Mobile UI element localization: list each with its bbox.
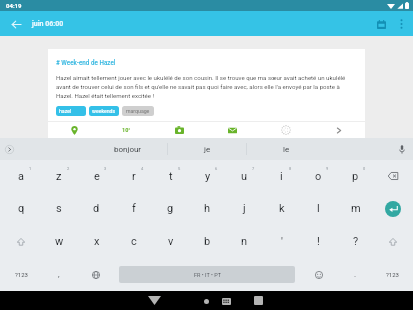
button[interactable]: x — [78, 225, 115, 258]
button[interactable]: le — [247, 138, 325, 160]
staticText: b — [204, 235, 211, 248]
button[interactable]: p — [337, 160, 374, 192]
button[interactable]: ?123 — [374, 258, 411, 291]
button[interactable]: e — [78, 160, 115, 192]
button[interactable]: ?123 — [2, 258, 40, 291]
button[interactable]: Home — [197, 292, 215, 310]
staticText: s — [56, 202, 62, 215]
button[interactable]: Email — [206, 122, 259, 138]
button[interactable]: ! — [300, 225, 337, 258]
staticText: q — [18, 202, 25, 215]
staticText: i — [280, 170, 283, 183]
button[interactable]: Next — [312, 122, 365, 138]
button[interactable]: v — [152, 225, 189, 258]
button[interactable]: 10° — [100, 122, 153, 138]
staticText: o — [315, 170, 322, 183]
button[interactable]: q — [2, 192, 40, 225]
staticText: a — [18, 170, 24, 183]
staticText: , — [58, 270, 60, 279]
button[interactable]: f — [115, 192, 152, 225]
button[interactable]: Recents — [247, 291, 269, 310]
button[interactable]: Calendar — [371, 14, 391, 34]
button[interactable]: Voice input — [395, 142, 409, 156]
staticText: je — [204, 145, 211, 154]
staticText: 2 — [67, 166, 70, 171]
button[interactable]: d — [78, 192, 115, 225]
button[interactable]: Back — [7, 15, 25, 33]
staticText: m — [351, 202, 361, 215]
staticText: r — [132, 170, 136, 183]
button[interactable]: Loading — [259, 122, 312, 138]
staticText: z — [56, 170, 62, 183]
staticText: u — [241, 170, 248, 183]
button[interactable]: je — [168, 138, 246, 160]
staticText: e — [94, 170, 100, 183]
staticText: t — [169, 170, 173, 183]
staticText: 5 — [178, 166, 181, 171]
staticText: 04:19 — [6, 2, 22, 9]
button[interactable]: Back — [143, 291, 165, 310]
button[interactable]: ? — [337, 225, 374, 258]
button[interactable]: weekends — [89, 106, 119, 116]
button[interactable]: t — [152, 160, 189, 192]
button[interactable]: , — [40, 258, 77, 291]
button[interactable]: h — [189, 192, 226, 225]
staticText: d — [93, 202, 100, 215]
staticText: w — [55, 235, 64, 248]
button[interactable]: r — [115, 160, 152, 192]
button[interactable]: Emoji — [300, 258, 337, 291]
staticText: juin 06:00 — [32, 20, 64, 28]
button[interactable]: Switch keyboard — [217, 292, 235, 310]
button[interactable]: FR • IT • PT — [119, 266, 295, 283]
button[interactable]: marquage — [122, 106, 154, 116]
staticText: 7 — [252, 166, 255, 171]
staticText: g — [167, 202, 174, 215]
button[interactable]: Expand suggestions — [2, 142, 16, 156]
button[interactable]: Shift — [2, 225, 40, 258]
button[interactable]: Change language — [77, 258, 114, 291]
staticText: FR • IT • PT — [194, 272, 221, 278]
button[interactable]: l — [300, 192, 337, 225]
button[interactable]: b — [189, 225, 226, 258]
button[interactable]: u — [226, 160, 263, 192]
button[interactable]: c — [115, 225, 152, 258]
staticText: k — [279, 202, 285, 215]
button[interactable]: k — [263, 192, 300, 225]
button[interactable]: a — [2, 160, 40, 192]
staticText: weekends — [92, 108, 116, 114]
button[interactable]: y — [189, 160, 226, 192]
button[interactable]: o — [300, 160, 337, 192]
button[interactable]: More options — [391, 14, 411, 34]
button[interactable]: Shift — [374, 225, 411, 258]
staticText: hazel — [59, 108, 72, 114]
staticText: 0 — [363, 166, 366, 171]
button[interactable]: Enter — [374, 192, 411, 225]
staticText: Hazel aimait tellement jouer avec le uku… — [56, 74, 357, 100]
staticText: 8 — [289, 166, 292, 171]
staticText: h — [204, 202, 211, 215]
staticText: f — [132, 202, 136, 215]
staticText: ?123 — [386, 271, 399, 278]
button[interactable]: s — [40, 192, 78, 225]
staticText: 4 — [141, 166, 144, 171]
staticText: v — [168, 235, 174, 248]
staticText: c — [131, 235, 137, 248]
button[interactable]: g — [152, 192, 189, 225]
button[interactable]: j — [226, 192, 263, 225]
button[interactable]: Location — [48, 122, 100, 138]
button[interactable]: Camera — [153, 122, 206, 138]
button[interactable]: ' — [263, 225, 300, 258]
button[interactable]: m — [337, 192, 374, 225]
button[interactable]: z — [40, 160, 78, 192]
button[interactable]: n — [226, 225, 263, 258]
staticText: bonjour — [114, 145, 142, 154]
button[interactable]: Backspace — [374, 160, 411, 192]
staticText: ?123 — [15, 271, 28, 278]
button[interactable]: w — [40, 225, 78, 258]
button[interactable]: i — [263, 160, 300, 192]
button[interactable]: bonjour — [88, 138, 167, 160]
button[interactable]: hazel — [56, 106, 86, 116]
staticText: 6 — [215, 166, 218, 171]
staticText: n — [241, 235, 248, 248]
